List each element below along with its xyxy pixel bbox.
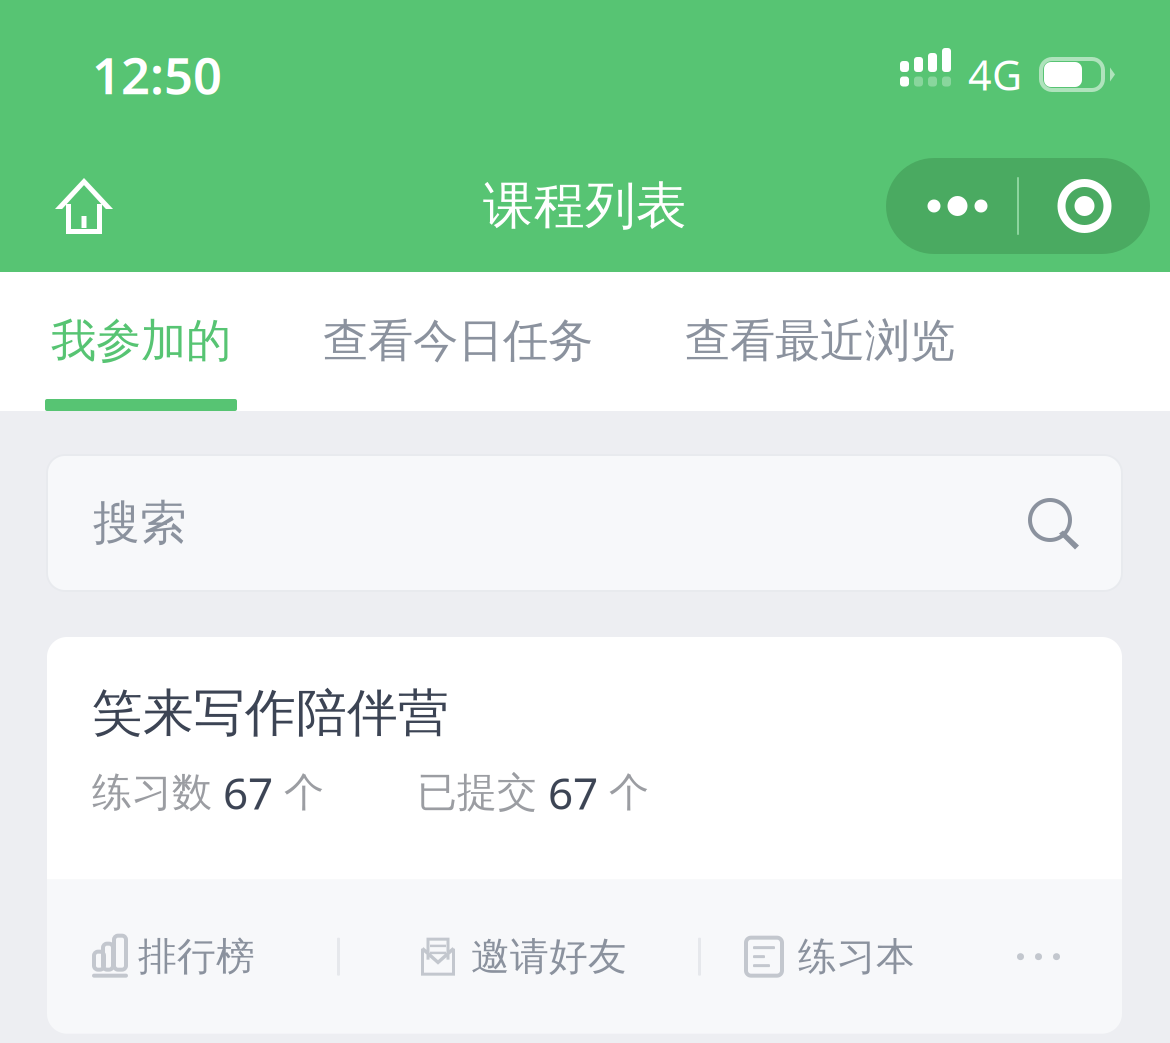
staticText: 67	[212, 763, 284, 822]
button[interactable]: 我参加的	[0, 272, 237, 411]
staticText: 排行榜	[138, 933, 255, 980]
staticText: 12:50	[92, 41, 222, 108]
staticText: 课程列表	[483, 175, 687, 237]
staticText: 我参加的	[51, 313, 231, 369]
staticText: 4G	[968, 47, 1022, 102]
button[interactable]: 邀请好友	[421, 880, 627, 1034]
button[interactable]: 排行榜	[92, 880, 255, 1034]
staticText: 搜索	[93, 494, 187, 552]
button[interactable]: 搜索	[47, 455, 1122, 591]
button[interactable]: More	[886, 140, 1170, 272]
staticText: 个	[284, 768, 324, 817]
button[interactable]: 查看今日任务	[237, 272, 593, 411]
staticText: 67	[537, 763, 609, 822]
button[interactable]: More options	[1016, 880, 1061, 1034]
staticText: 邀请好友	[471, 933, 627, 980]
staticText: 个	[609, 768, 649, 817]
staticText: 练习数	[92, 768, 212, 817]
button[interactable]: 练习本	[746, 880, 915, 1034]
button[interactable]: Home	[0, 140, 143, 272]
staticText: 笑来写作陪伴营	[92, 682, 449, 744]
staticText: 练习本	[798, 933, 915, 980]
button[interactable]: 查看最近浏览	[593, 272, 955, 411]
staticText: 查看今日任务	[323, 313, 593, 369]
staticText: 查看最近浏览	[685, 313, 955, 369]
staticText: 已提交	[417, 768, 537, 817]
